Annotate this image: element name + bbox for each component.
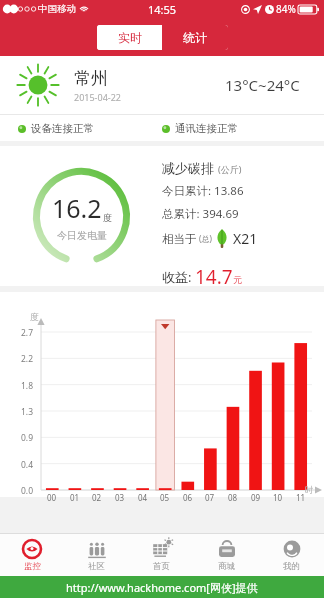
staticText: 09	[251, 492, 261, 503]
staticText: 04	[138, 492, 148, 503]
staticText: 设备连接正常	[31, 122, 94, 135]
staticText: 08	[228, 492, 238, 503]
staticText: 03	[115, 492, 125, 503]
staticText: 0.4	[21, 459, 34, 471]
staticText: 社区	[88, 561, 105, 572]
button[interactable]: 监控	[0, 534, 64, 576]
button[interactable]: 首页	[129, 534, 194, 576]
staticText: 14:55	[148, 2, 177, 17]
staticText: 度	[103, 212, 112, 223]
button[interactable]: 商城	[194, 534, 259, 576]
staticText: 监控	[24, 561, 41, 572]
staticText: 16.2	[52, 191, 102, 225]
staticText: 总累计: 394.69	[162, 206, 239, 222]
staticText: 05	[160, 492, 170, 503]
staticText: 我的	[283, 561, 300, 572]
other: 社区	[87, 539, 107, 559]
staticText: 首页	[153, 561, 170, 572]
button[interactable]: 统计	[162, 25, 228, 50]
staticText: 2015-04-22	[74, 91, 121, 103]
button[interactable]: 社区	[64, 534, 129, 576]
staticText: 10	[273, 492, 283, 503]
staticText: 02	[92, 492, 102, 503]
staticText: 2.2	[21, 353, 34, 365]
staticText: 今日累计: 13.86	[162, 183, 244, 199]
staticText: X21	[233, 229, 258, 248]
staticText: (公斤)	[218, 163, 242, 175]
other: 监控	[22, 539, 42, 559]
staticText: 相当于	[162, 232, 197, 246]
staticText: 01	[70, 492, 80, 503]
staticText: 1.8	[21, 380, 34, 392]
staticText: 实时	[118, 30, 142, 45]
staticText: 2.7	[21, 327, 34, 339]
staticText: http://www.hackhome.com[网侠]提供	[66, 580, 258, 595]
button[interactable]: 实时	[97, 25, 162, 50]
staticText: 时	[305, 485, 314, 496]
staticText: 00	[47, 492, 57, 503]
other: 首页	[152, 539, 172, 559]
button[interactable]: 我的	[259, 534, 324, 576]
staticText: 统计	[183, 30, 207, 45]
other: 我的	[282, 539, 302, 559]
other: 商城	[217, 539, 237, 559]
staticText: 元	[233, 274, 242, 285]
staticText: 14.7	[195, 264, 233, 286]
staticText: 11	[296, 492, 306, 503]
staticText: 84%	[276, 2, 296, 16]
staticText: 中国移动	[38, 3, 76, 15]
staticText: 通讯连接正常	[175, 122, 238, 135]
staticText: 1.3	[21, 406, 34, 418]
staticText: 13°C~24°C	[225, 75, 300, 95]
staticText: 今日发电量	[57, 229, 107, 242]
staticText: 减少碳排	[162, 160, 214, 176]
staticText: 度	[30, 312, 39, 323]
staticText: 0.9	[21, 432, 34, 444]
staticText: 商城	[218, 561, 235, 572]
staticText: 06	[183, 492, 193, 503]
staticText: (总)	[199, 233, 212, 244]
staticText: 07	[205, 492, 215, 503]
staticText: 常州	[74, 68, 108, 89]
staticText: 0.0	[21, 485, 34, 497]
staticText: 收益:	[162, 268, 192, 286]
